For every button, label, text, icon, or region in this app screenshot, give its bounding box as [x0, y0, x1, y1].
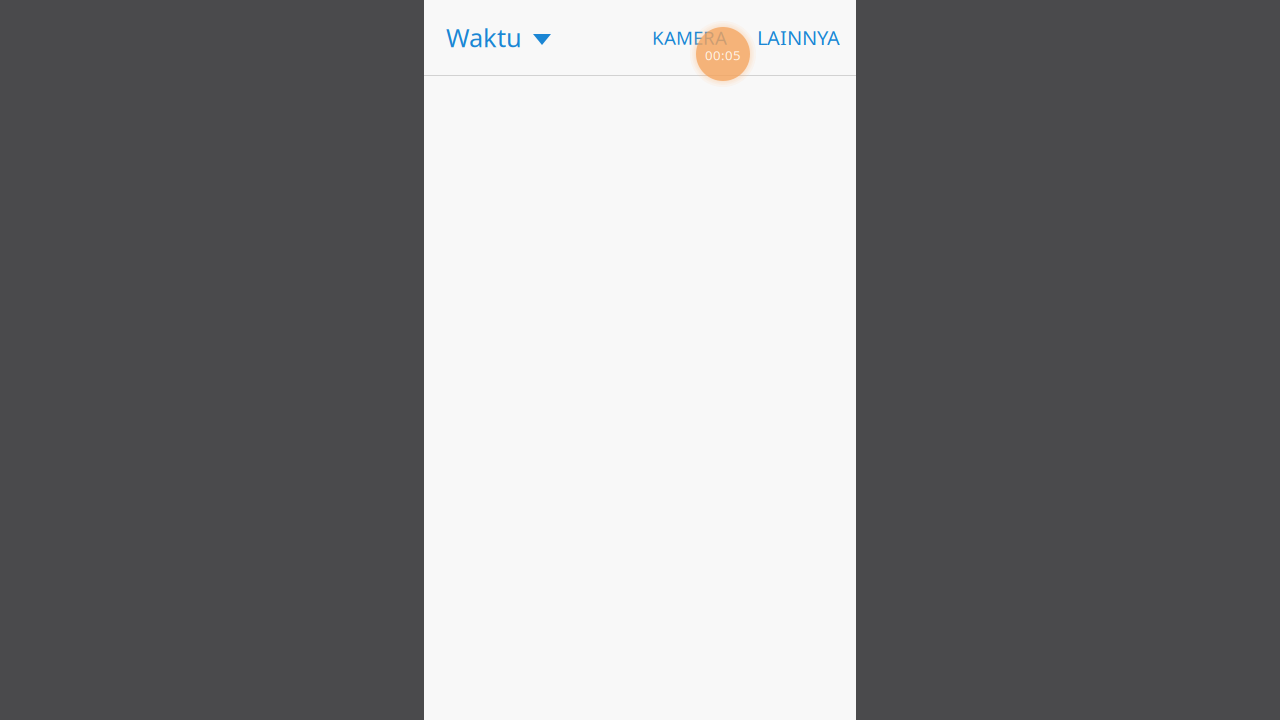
button[interactable]: KAMERA [652, 0, 727, 75]
staticText: KAMERA [652, 25, 727, 50]
staticText: 00:05 [705, 46, 741, 64]
button[interactable]: Recording timer 00:05 [690, 21, 756, 87]
button[interactable]: Waktu [446, 0, 551, 75]
staticText: Waktu [446, 21, 522, 54]
button[interactable]: LAINNYA [757, 0, 840, 75]
staticText: LAINNYA [757, 24, 840, 51]
